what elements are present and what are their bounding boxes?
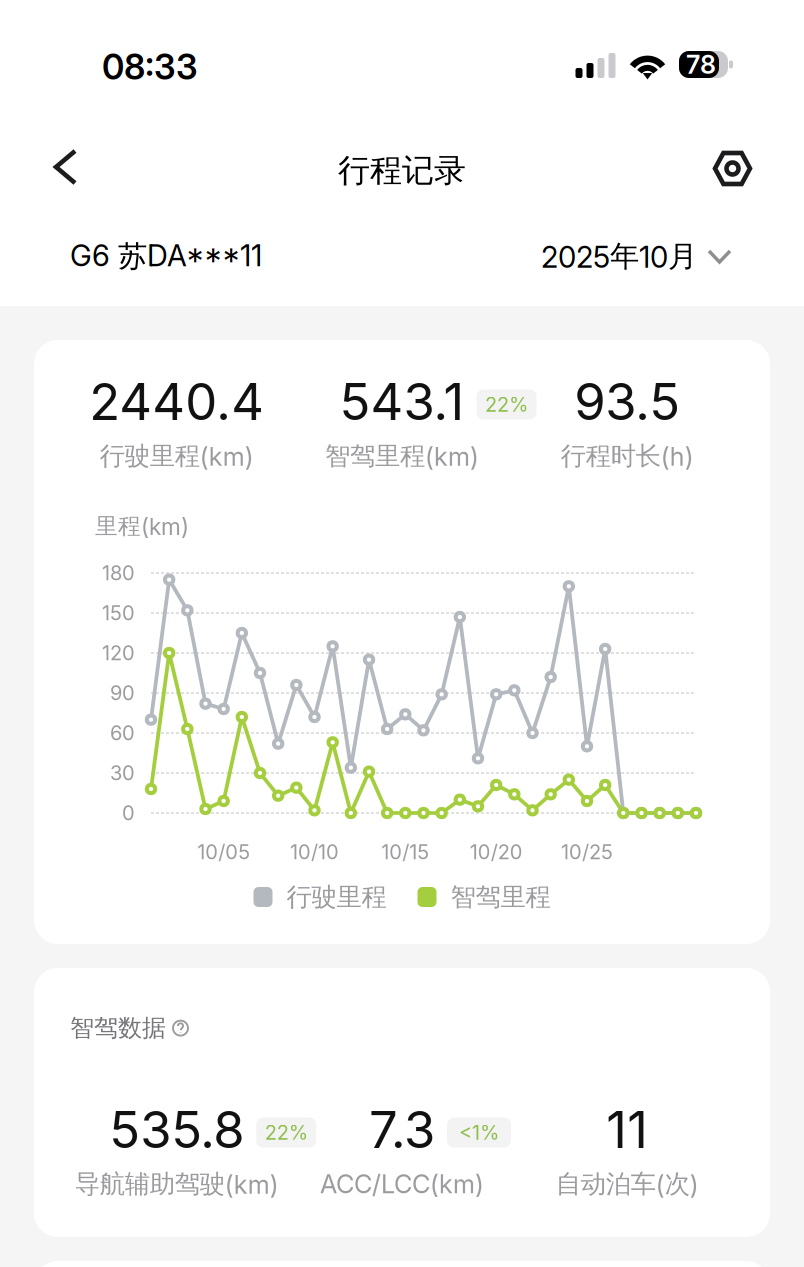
staticText: 行程记录 bbox=[338, 150, 466, 191]
staticText: 自动泊车(次) bbox=[556, 1168, 699, 1200]
staticText: ACC/LCC(km) bbox=[320, 1169, 484, 1199]
staticText: 7.3 bbox=[369, 1099, 435, 1160]
staticText: 60 bbox=[110, 721, 135, 745]
staticText: 10/15 bbox=[381, 840, 429, 864]
staticText: 30 bbox=[110, 761, 135, 785]
staticText: 90 bbox=[110, 681, 135, 705]
staticText: 导航辅助驾驶(km) bbox=[75, 1168, 279, 1200]
staticText: 0 bbox=[122, 801, 135, 825]
staticText: 543.1 bbox=[339, 371, 464, 432]
staticText: 08:33 bbox=[102, 46, 198, 88]
staticText: 2025年10月 bbox=[541, 238, 697, 275]
staticText: 535.8 bbox=[109, 1099, 244, 1160]
staticText: 11 bbox=[606, 1099, 648, 1160]
staticText: 22% bbox=[485, 392, 528, 417]
staticText: 10/20 bbox=[470, 840, 523, 864]
staticText: 里程(km) bbox=[95, 512, 189, 541]
button[interactable]: About autopilot data bbox=[173, 1021, 188, 1036]
staticText: 智驾数据 bbox=[70, 1013, 166, 1043]
staticText: 智驾里程 bbox=[450, 881, 550, 913]
staticText: 22% bbox=[265, 1120, 308, 1145]
staticText: 10/10 bbox=[290, 840, 339, 864]
staticText: 行驶里程 bbox=[286, 881, 386, 913]
staticText: 78 bbox=[686, 49, 716, 80]
staticText: 行程时长(h) bbox=[561, 440, 694, 472]
staticText: G6 苏DA***11 bbox=[70, 238, 262, 275]
button[interactable]: Back bbox=[32, 133, 99, 201]
staticText: 150 bbox=[102, 601, 135, 625]
staticText: 10/05 bbox=[197, 840, 250, 864]
staticText: <1% bbox=[459, 1120, 499, 1145]
staticText: 93.5 bbox=[574, 371, 680, 432]
button[interactable]: 2025年10月 bbox=[541, 238, 730, 275]
staticText: 180 bbox=[102, 561, 135, 585]
staticText: 智驾里程(km) bbox=[325, 440, 479, 472]
staticText: 10/25 bbox=[561, 840, 613, 864]
staticText: 2440.4 bbox=[89, 371, 264, 432]
staticText: 行驶里程(km) bbox=[100, 440, 254, 472]
staticText: 120 bbox=[102, 641, 135, 665]
button[interactable]: Settings bbox=[693, 133, 772, 204]
